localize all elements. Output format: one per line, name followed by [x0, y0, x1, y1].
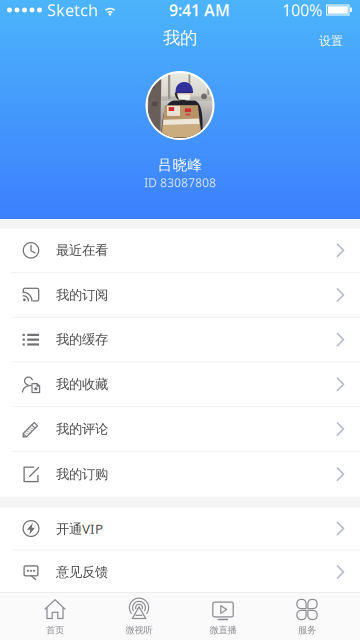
button[interactable]: 微视听 [97, 592, 181, 640]
staticText: 最近在看 [56, 242, 108, 258]
staticText: 我的订购 [56, 466, 108, 482]
button[interactable]: 我的收藏 [0, 362, 360, 407]
staticText: 首页 [46, 624, 64, 636]
button[interactable]: Profile photo [145, 71, 214, 140]
button[interactable]: 微直播 [181, 592, 265, 640]
button[interactable]: 我的订购 [0, 452, 360, 497]
staticText: 我的缓存 [56, 331, 108, 348]
button[interactable]: 我的订阅 [0, 273, 360, 318]
button[interactable]: 意见反馈 [0, 550, 360, 593]
button[interactable]: 我的评论 [0, 407, 360, 452]
staticText: 我的订阅 [56, 287, 108, 303]
staticText: 我的收藏 [56, 376, 108, 393]
button[interactable]: 最近在看 [0, 228, 360, 273]
staticText: 微直播 [209, 624, 236, 636]
button[interactable]: 我的缓存 [0, 318, 360, 362]
staticText: 服务 [298, 624, 316, 636]
staticText: 微视听 [125, 624, 152, 636]
staticText: Sketch [47, 0, 98, 21]
button[interactable]: 开通VIP [0, 507, 360, 550]
staticText: 吕晓峰 [157, 156, 202, 174]
staticText: 100% [282, 0, 322, 21]
staticText: ID 83087808 [144, 174, 216, 190]
staticText: 我的评论 [56, 421, 108, 437]
staticText: 设置 [319, 34, 343, 48]
button[interactable]: 首页 [13, 592, 97, 640]
staticText: 意见反馈 [56, 564, 108, 580]
button[interactable]: 设置 [307, 26, 360, 50]
staticText: 9:41 AM [169, 0, 230, 21]
button[interactable]: 服务 [265, 592, 349, 640]
staticText: 我的 [163, 27, 197, 49]
staticText: 开通VIP [56, 520, 103, 537]
